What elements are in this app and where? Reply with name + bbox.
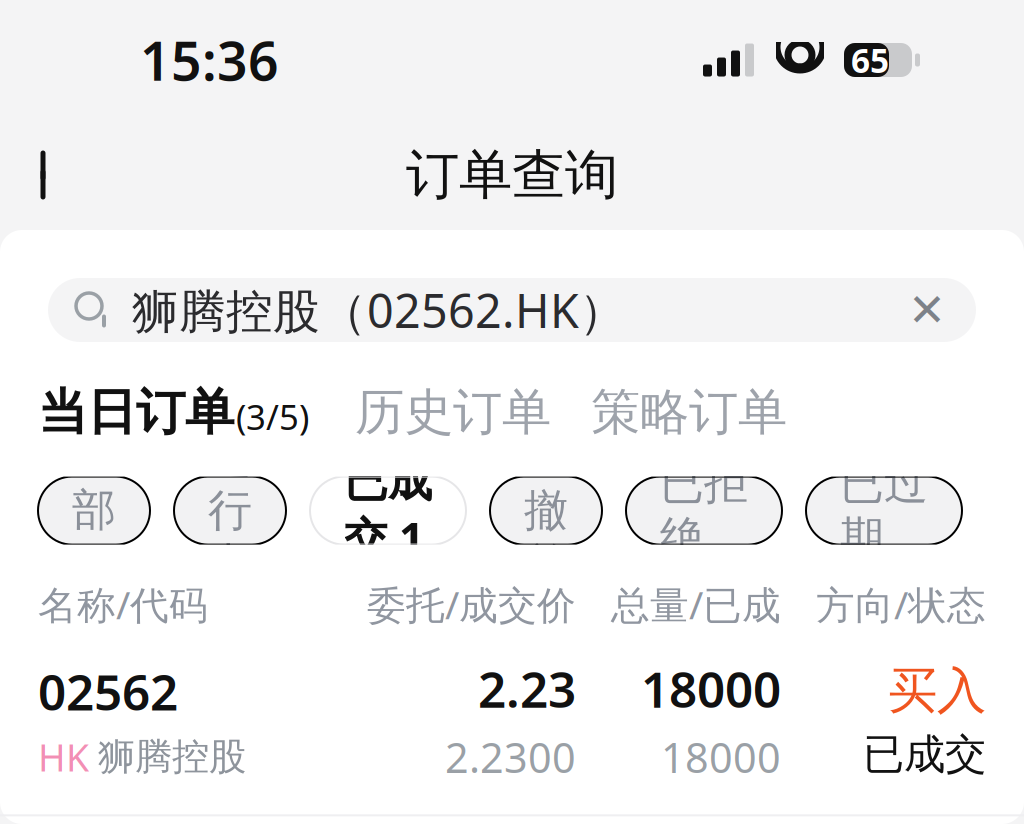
staticText: ✕	[908, 284, 946, 336]
staticText: 全部 1	[72, 425, 116, 596]
staticText: 已过期	[840, 457, 928, 565]
staticText: 18000	[641, 656, 781, 721]
staticText: 总量/已成	[611, 579, 781, 630]
button[interactable]: 进行中	[174, 477, 286, 545]
staticText: 已拒绝	[660, 457, 748, 565]
staticText: 历史订单	[355, 382, 551, 443]
button[interactable]: 已撤单	[490, 477, 602, 545]
button[interactable]: 当日订单	[38, 382, 309, 443]
staticText: 订单查询	[406, 142, 618, 208]
staticText: 已成交	[863, 729, 986, 780]
staticText: 方向/状态	[816, 579, 986, 630]
staticText: 2.2300	[445, 729, 576, 784]
staticText: 02562	[38, 659, 178, 724]
staticText: 18000	[661, 729, 781, 784]
staticText: 15:36	[140, 25, 279, 95]
staticText: 2.23	[478, 656, 576, 721]
button[interactable]: 返回	[0, 135, 96, 215]
staticText: 狮腾控股（02562.HK）	[132, 279, 626, 341]
staticText: (3/5)	[236, 394, 309, 440]
staticText: 名称/代码	[38, 579, 208, 630]
button[interactable]: 已拒绝	[626, 477, 782, 545]
staticText: 已撤单	[524, 429, 568, 592]
staticText: 委托/成交价	[367, 579, 576, 630]
button[interactable]: 全部 1	[38, 477, 150, 545]
button[interactable]: 已成交 1	[310, 477, 466, 545]
button[interactable]: 已过期	[806, 477, 962, 545]
button[interactable]: 清除	[892, 278, 962, 342]
staticText: 买入	[888, 660, 986, 721]
staticText: HK	[38, 732, 89, 782]
staticText: 进行中	[208, 429, 252, 592]
button[interactable]: 02562	[38, 656, 986, 784]
staticText: 65	[851, 38, 889, 82]
staticText: 狮腾控股	[98, 734, 246, 780]
staticText: 策略订单	[591, 382, 787, 443]
button[interactable]: 策略订单	[591, 382, 787, 443]
staticText: 已成交 1	[344, 454, 432, 567]
staticText: 当日订单	[38, 382, 234, 443]
button[interactable]: 历史订单	[355, 382, 551, 443]
